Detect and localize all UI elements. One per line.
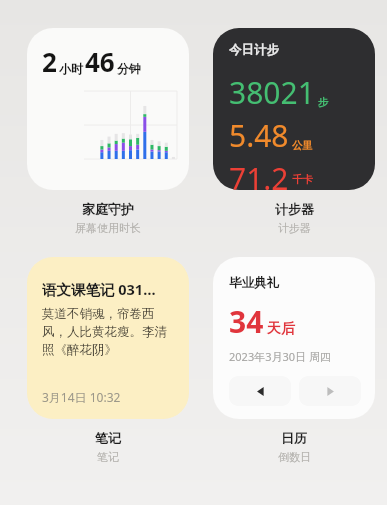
button[interactable]: Next: [299, 376, 361, 406]
staticText: 笔记: [95, 430, 121, 446]
staticText: 毕业典礼: [229, 275, 279, 291]
staticText: 46: [85, 44, 115, 79]
button[interactable]: 2: [27, 28, 189, 190]
staticText: 3月14日 10:32: [42, 389, 121, 405]
staticText: 2: [42, 44, 57, 79]
staticText: 莫道不销魂，帘卷西风，人比黄花瘦。李清照《醉花阴》: [42, 306, 175, 358]
staticText: 38021: [229, 72, 315, 113]
staticText: 家庭守护: [82, 201, 134, 217]
button[interactable]: 今日计步: [213, 28, 375, 190]
staticText: 71.2: [229, 158, 289, 190]
staticText: 计步器: [275, 201, 314, 217]
button[interactable]: 语文课笔记 031…: [27, 257, 189, 419]
button[interactable]: Previous: [229, 376, 291, 406]
staticText: 2023年3月30日 周四: [229, 349, 331, 364]
staticText: 小时: [59, 61, 83, 76]
staticText: 天后: [267, 320, 295, 338]
staticText: 步: [318, 96, 329, 109]
staticText: 分钟: [117, 61, 141, 76]
staticText: 公里: [292, 139, 313, 152]
staticText: 计步器: [278, 221, 311, 235]
button[interactable]: 毕业典礼: [213, 257, 375, 419]
staticText: 倒数日: [278, 450, 311, 464]
staticText: 日历: [281, 430, 307, 446]
staticText: 千卡: [292, 173, 313, 186]
staticText: 语文课笔记 031…: [42, 279, 156, 299]
staticText: 屏幕使用时长: [75, 221, 141, 235]
staticText: 今日计步: [229, 42, 279, 58]
staticText: 34: [229, 301, 264, 342]
staticText: 5.48: [229, 115, 289, 156]
staticText: 笔记: [97, 450, 119, 464]
